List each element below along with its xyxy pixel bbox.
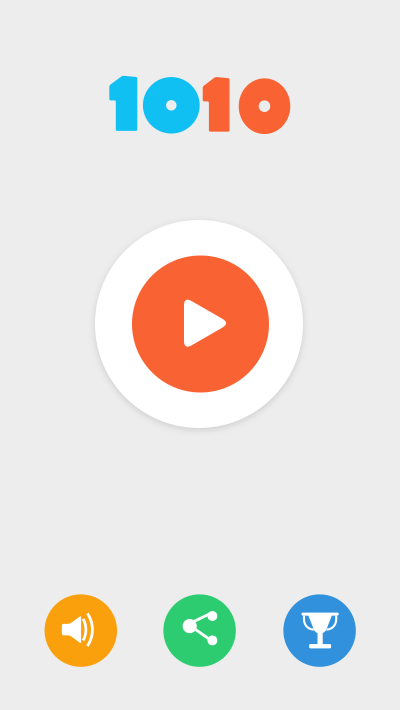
- button[interactable]: Leaderboard: [283, 594, 356, 667]
- button[interactable]: Share: [163, 594, 236, 667]
- button[interactable]: Play: [95, 220, 303, 428]
- button[interactable]: Sound: [44, 594, 117, 667]
